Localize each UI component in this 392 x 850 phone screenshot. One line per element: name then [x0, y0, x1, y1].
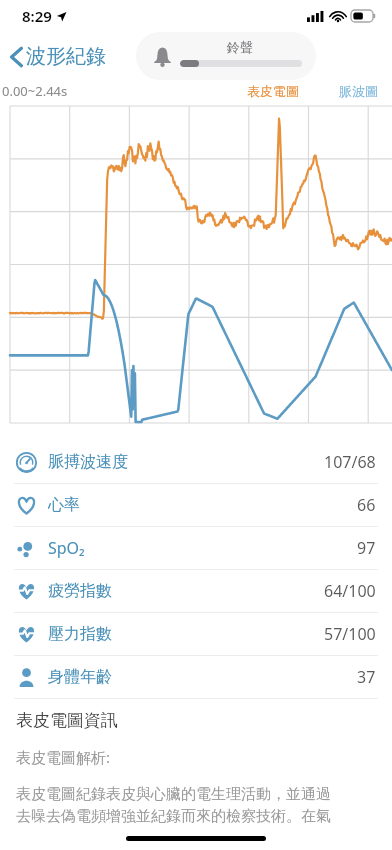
- button[interactable]: 疲勞指數: [0, 570, 392, 612]
- button[interactable]: 表皮電圖: [247, 83, 299, 99]
- button[interactable]: 波形紀錄: [0, 40, 114, 73]
- staticText: 壓力指數: [48, 624, 112, 644]
- staticText: 疲勞指數: [48, 581, 112, 601]
- staticText: 脈搏波速度: [48, 452, 128, 472]
- staticText: 0.00~2.44s: [2, 82, 68, 100]
- staticText: 64/100: [324, 580, 376, 602]
- button[interactable]: 身體年齡: [0, 656, 392, 698]
- staticText: 身體年齡: [48, 667, 112, 687]
- staticText: 66: [357, 494, 376, 516]
- staticText: 鈴聲: [227, 39, 253, 55]
- staticText: SpO₂: [48, 537, 85, 559]
- button[interactable]: 壓力指數: [0, 613, 392, 655]
- staticText: 97: [357, 537, 376, 559]
- button[interactable]: 脈搏波速度: [0, 441, 392, 483]
- staticText: 心率: [48, 495, 80, 515]
- button[interactable]: 脈波圖: [339, 83, 378, 99]
- staticText: 107/68: [324, 451, 376, 473]
- button[interactable]: SpO₂: [0, 527, 392, 569]
- staticText: 8:29: [22, 6, 52, 26]
- staticText: 波形紀錄: [26, 44, 106, 69]
- staticText: 37: [357, 666, 376, 688]
- staticText: 表皮電圖紀錄表皮與心臟的電生理活動，並通過 去噪去偽電頻增強並紀錄而來的檢察技術…: [16, 785, 331, 826]
- staticText: 表皮電圖解析:: [16, 747, 111, 767]
- staticText: 表皮電圖資訊: [16, 710, 118, 731]
- button[interactable]: 心率: [0, 484, 392, 526]
- staticText: 57/100: [324, 623, 376, 645]
